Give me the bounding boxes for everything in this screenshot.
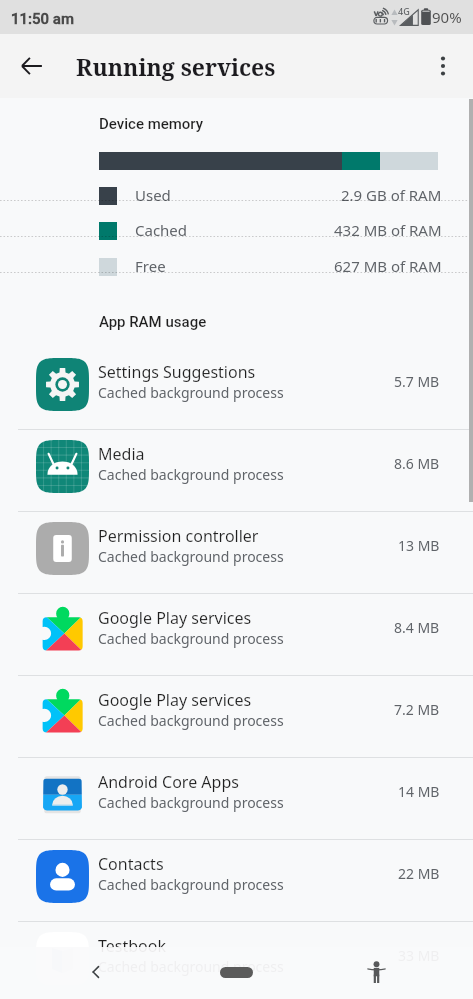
- staticText: Cached background process: [98, 957, 284, 976]
- staticText: 13 MB: [398, 536, 440, 555]
- staticText: 90%: [432, 7, 462, 27]
- staticText: Cached background process: [98, 711, 284, 730]
- staticText: Cached background process: [98, 465, 284, 484]
- staticText: Used: [135, 185, 171, 205]
- staticText: Settings Suggestions: [98, 361, 256, 383]
- staticText: 14 MB: [398, 782, 440, 801]
- staticText: 432 MB of RAM: [334, 220, 442, 240]
- button[interactable]: Media: [0, 430, 473, 511]
- button[interactable]: Back: [76, 952, 116, 992]
- staticText: Cached background process: [98, 793, 284, 812]
- button[interactable]: Google Play services: [0, 594, 473, 675]
- staticText: Google Play services: [98, 607, 252, 629]
- staticText: Google Play services: [98, 689, 252, 711]
- staticText: 2.9 GB of RAM: [341, 185, 442, 205]
- button[interactable]: Accessibility: [356, 952, 396, 992]
- button[interactable]: Google Play services: [0, 676, 473, 757]
- staticText: 22 MB: [398, 864, 440, 883]
- staticText: Contacts: [98, 853, 164, 875]
- staticText: 8.4 MB: [394, 618, 440, 637]
- staticText: Permission controller: [98, 525, 259, 547]
- button[interactable]: Back: [8, 42, 56, 90]
- button[interactable]: Contacts: [0, 840, 473, 921]
- staticText: 627 MB of RAM: [334, 256, 442, 276]
- button[interactable]: Android Core Apps: [0, 758, 473, 839]
- staticText: 7.2 MB: [394, 700, 440, 719]
- button[interactable]: Home: [204, 957, 268, 987]
- staticText: Testbook: [98, 935, 166, 957]
- staticText: Cached background process: [98, 383, 284, 402]
- staticText: 4G: [398, 5, 410, 17]
- staticText: Cached background process: [98, 547, 284, 566]
- staticText: 11:50 am: [11, 10, 74, 28]
- staticText: Cached: [135, 220, 188, 240]
- staticText: Media: [98, 443, 145, 465]
- staticText: Device memory: [99, 115, 204, 133]
- staticText: Android Core Apps: [98, 771, 239, 793]
- button[interactable]: More options: [419, 42, 467, 90]
- staticText: Free: [135, 256, 166, 276]
- button[interactable]: Testbook: [0, 922, 473, 999]
- staticText: Cached background process: [98, 629, 284, 648]
- staticText: 33 MB: [398, 946, 440, 965]
- button[interactable]: Permission controller: [0, 512, 473, 593]
- staticText: App RAM usage: [99, 313, 207, 331]
- staticText: 5.7 MB: [394, 372, 440, 391]
- staticText: Cached background process: [98, 875, 284, 894]
- staticText: Running services: [76, 51, 276, 82]
- button[interactable]: Settings Suggestions: [0, 348, 473, 429]
- staticText: 8.6 MB: [394, 454, 440, 473]
